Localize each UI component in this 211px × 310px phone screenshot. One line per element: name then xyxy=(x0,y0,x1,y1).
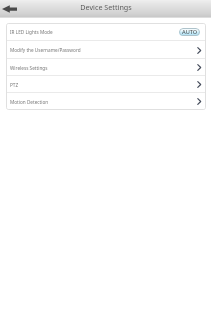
staticText: IR LED Lights Mode xyxy=(10,29,53,35)
button[interactable]: Back xyxy=(0,1,22,18)
button[interactable]: IR LED Lights Mode xyxy=(6,23,206,41)
button[interactable]: Modify the Username/Password xyxy=(6,41,206,59)
staticText: Device Settings xyxy=(80,2,132,12)
staticText: Motion Detection xyxy=(10,99,49,105)
button[interactable]: Wireless Settings xyxy=(6,59,206,76)
button[interactable]: PTZ xyxy=(6,76,206,93)
staticText: PTZ xyxy=(10,82,19,88)
staticText: AUTO xyxy=(182,28,198,36)
button[interactable]: AUTO xyxy=(179,28,200,36)
staticText: Modify the Username/Password xyxy=(10,47,81,53)
button[interactable]: Motion Detection xyxy=(6,93,206,110)
staticText: Wireless Settings xyxy=(10,65,48,71)
